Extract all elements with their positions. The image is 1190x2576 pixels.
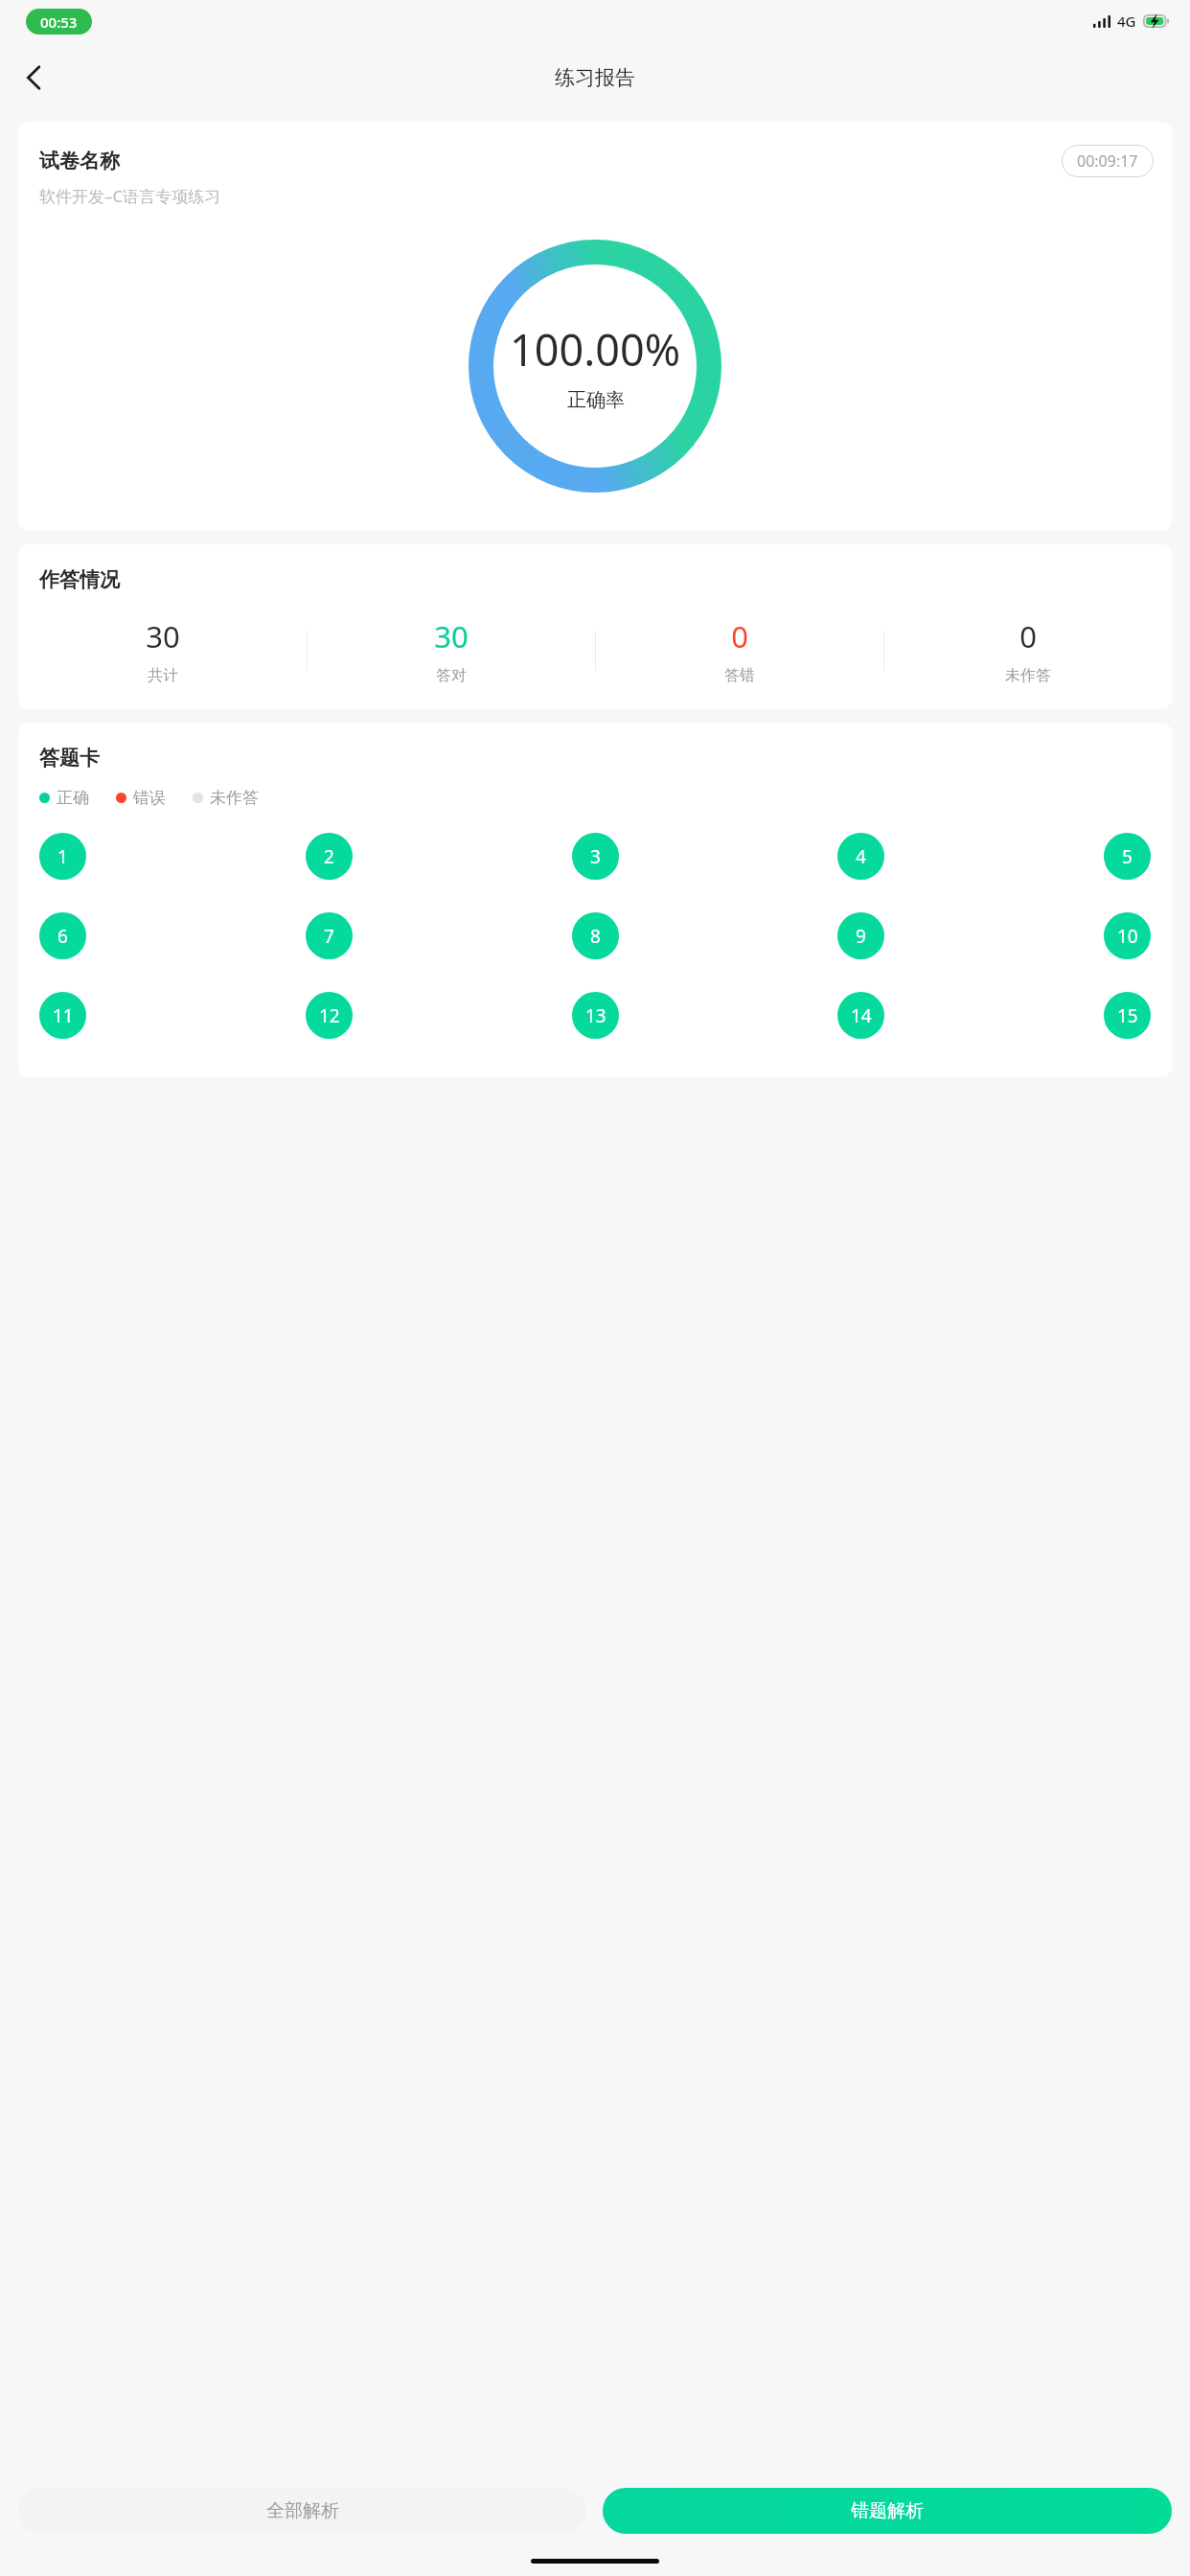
- button[interactable]: 4: [837, 833, 884, 880]
- staticText: 答题卡: [39, 746, 100, 770]
- staticText: 30: [146, 616, 180, 656]
- button[interactable]: 10: [1104, 912, 1151, 959]
- staticText: 软件开发–C语言专项练习: [39, 185, 221, 207]
- button[interactable]: 9: [837, 912, 884, 959]
- button[interactable]: 8: [572, 912, 619, 959]
- staticText: 6: [57, 924, 68, 949]
- staticText: 5: [1122, 844, 1133, 869]
- staticText: 00:09:17: [1077, 150, 1138, 172]
- staticText: 0: [1019, 616, 1037, 656]
- button[interactable]: 5: [1104, 833, 1151, 880]
- staticText: 3: [590, 844, 601, 869]
- button[interactable]: Back: [6, 50, 61, 105]
- button[interactable]: 7: [306, 912, 353, 959]
- staticText: 9: [856, 924, 866, 949]
- button[interactable]: 12: [306, 992, 353, 1039]
- button[interactable]: 6: [39, 912, 86, 959]
- staticText: 4: [856, 844, 866, 869]
- staticText: 11: [53, 1003, 74, 1028]
- staticText: 错误: [133, 788, 166, 808]
- staticText: 10: [1117, 924, 1138, 949]
- staticText: 8: [590, 924, 601, 949]
- staticText: 12: [319, 1003, 340, 1028]
- button[interactable]: 错题解析: [603, 2488, 1172, 2534]
- staticText: 答对: [436, 666, 467, 685]
- staticText: 正确: [57, 788, 89, 808]
- staticText: 共计: [148, 666, 178, 685]
- staticText: 2: [324, 844, 334, 869]
- staticText: 练习报告: [555, 65, 635, 90]
- staticText: 15: [1117, 1003, 1138, 1028]
- staticText: 未作答: [210, 788, 259, 808]
- staticText: 错题解析: [851, 2499, 924, 2522]
- staticText: 试卷名称: [39, 149, 120, 173]
- button[interactable]: 2: [306, 833, 353, 880]
- staticText: 14: [851, 1003, 872, 1028]
- button[interactable]: 全部解析: [18, 2488, 586, 2534]
- staticText: 答错: [724, 666, 755, 685]
- button[interactable]: 14: [837, 992, 884, 1039]
- button[interactable]: 3: [572, 833, 619, 880]
- staticText: 7: [324, 924, 334, 949]
- button[interactable]: 13: [572, 992, 619, 1039]
- staticText: 4G: [1117, 11, 1136, 31]
- staticText: 30: [434, 616, 469, 656]
- staticText: 未作答: [1005, 666, 1051, 685]
- staticText: 00:53: [40, 12, 78, 32]
- staticText: 正确率: [567, 388, 625, 412]
- staticText: 13: [585, 1003, 606, 1028]
- staticText: 100.00%: [510, 320, 681, 379]
- staticText: 0: [731, 616, 748, 656]
- staticText: 1: [57, 844, 68, 869]
- staticText: 全部解析: [266, 2499, 339, 2522]
- button[interactable]: 11: [39, 992, 86, 1039]
- button[interactable]: 15: [1104, 992, 1151, 1039]
- button[interactable]: 1: [39, 833, 86, 880]
- staticText: 作答情况: [39, 567, 120, 592]
